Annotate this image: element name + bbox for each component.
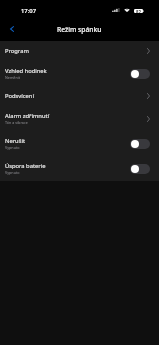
staticText: Neměnit: [5, 75, 20, 80]
staticText: Nerušit: [5, 137, 26, 145]
staticText: Vypnuto: [5, 170, 20, 175]
staticText: Režim spánku: [57, 25, 102, 34]
staticText: 82: [136, 9, 141, 13]
staticText: Podsvícení: [5, 92, 34, 100]
other: Open: [147, 116, 150, 122]
button[interactable]: Back: [2, 20, 21, 37]
button[interactable]: Alarm zdřímnutí: [0, 106, 159, 131]
other: Open: [147, 93, 150, 99]
staticText: Program: [5, 47, 29, 55]
staticText: 17:07: [21, 7, 37, 15]
button[interactable]: Podsvícení: [0, 86, 159, 106]
button[interactable]: Vzhled hodinek: [0, 61, 159, 86]
staticText: Úspora baterie: [5, 162, 46, 170]
button[interactable]: Toggle: [130, 164, 150, 174]
button[interactable]: Toggle: [130, 69, 150, 79]
other: Open: [147, 48, 150, 54]
staticText: Vzhled hodinek: [5, 67, 47, 75]
staticText: Vypnuto: [5, 145, 20, 150]
staticText: Alarm zdřímnutí: [5, 112, 50, 120]
button[interactable]: Program: [0, 41, 159, 61]
button[interactable]: Úspora baterie: [0, 156, 159, 181]
staticText: Tón a vibrace: [5, 120, 28, 125]
button[interactable]: Nerušit: [0, 131, 159, 156]
button[interactable]: Toggle: [130, 139, 150, 149]
